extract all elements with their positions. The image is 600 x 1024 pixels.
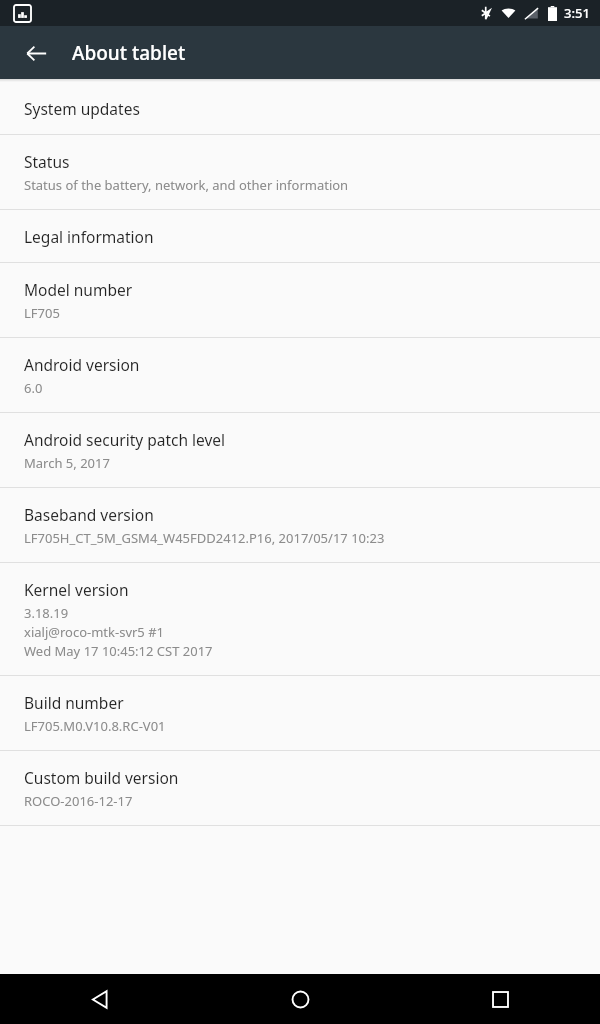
staticText: 6.0 [24,379,43,397]
button[interactable]: Kernel version [0,563,600,675]
staticText: Status of the battery, network, and othe… [24,176,349,194]
staticText: LF705H_CT_5M_GSM4_W45FDD2412.P16, 2017/0… [24,529,385,547]
staticText: 3.18.19 [24,604,69,622]
staticText: Baseband version [24,504,154,525]
staticText: Build number [24,692,124,713]
staticText: LF705 [24,304,60,322]
button[interactable]: Recent apps [400,974,600,1024]
staticText: Android security patch level [24,429,226,450]
staticText: 3:51 [564,4,590,22]
staticText: Android version [24,354,140,375]
button[interactable]: Home [200,974,400,1024]
button[interactable]: Legal information [0,210,600,262]
button[interactable]: Navigate up [14,31,58,75]
button[interactable]: Back [0,974,200,1024]
staticText: Kernel version [24,579,129,600]
staticText: Model number [24,279,133,300]
staticText: About tablet [72,40,186,66]
button[interactable]: Baseband version [0,488,600,562]
button[interactable]: Model number [0,263,600,337]
staticText: ROCO-2016-12-17 [24,792,133,810]
staticText: Wed May 17 10:45:12 CST 2017 [24,642,213,660]
staticText: Status [24,151,70,172]
staticText: LF705.M0.V10.8.RC-V01 [24,717,166,735]
button[interactable]: Android version [0,338,600,412]
staticText: Custom build version [24,767,179,788]
staticText: Legal information [24,226,154,247]
button[interactable]: System updates [0,82,600,134]
staticText: xialj@roco-mtk-svr5 #1 [24,623,165,641]
button[interactable]: Custom build version [0,751,600,825]
button[interactable]: Build number [0,676,600,750]
button[interactable]: Android security patch level [0,413,600,487]
staticText: System updates [24,98,140,119]
button[interactable]: Status [0,135,600,209]
staticText: March 5, 2017 [24,454,110,472]
